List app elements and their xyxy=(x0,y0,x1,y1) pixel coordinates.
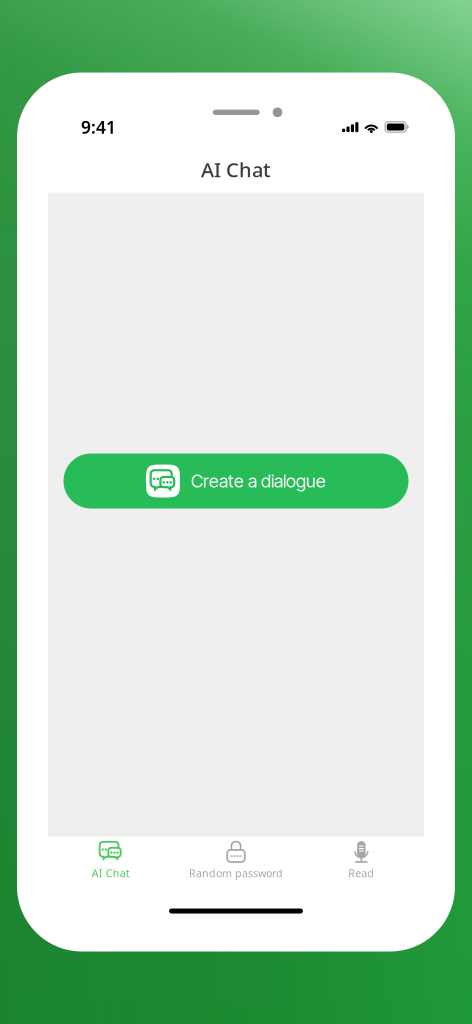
staticText: AI Chat xyxy=(201,156,271,183)
staticText: Random password xyxy=(189,866,283,880)
staticText: 9:41 xyxy=(81,115,116,138)
staticText: Read xyxy=(348,866,374,880)
staticText: AI Chat xyxy=(92,866,130,880)
staticText: Create a dialogue xyxy=(191,470,326,492)
button[interactable]: AI Chat xyxy=(48,835,173,886)
button[interactable]: Random password xyxy=(173,835,299,886)
button[interactable]: Create a dialogue xyxy=(63,453,408,508)
button[interactable]: Read xyxy=(299,835,424,886)
